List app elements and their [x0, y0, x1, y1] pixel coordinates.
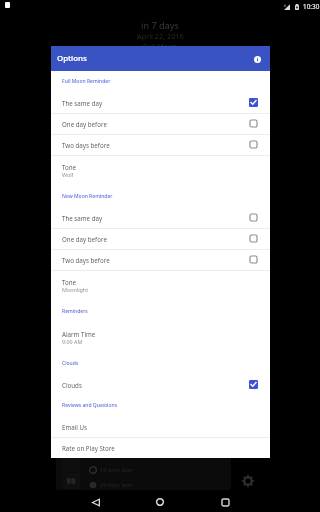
- button[interactable]: Home: [148, 492, 172, 512]
- staticText: Email Us: [62, 423, 87, 431]
- button[interactable]: Recents: [213, 492, 237, 512]
- staticText: Tone: [62, 278, 77, 286]
- button[interactable]: Two days before: [51, 134, 270, 155]
- button[interactable]: Tone: [51, 155, 270, 186]
- staticText: Tone: [62, 163, 77, 171]
- button[interactable]: Info: [250, 52, 264, 66]
- staticText: Wolf: [62, 171, 74, 178]
- button[interactable]: Back: [84, 492, 108, 512]
- staticText: Options: [57, 53, 87, 64]
- button[interactable]: Reviews and Questions: [51, 395, 270, 416]
- staticText: in 7 days: [141, 19, 179, 31]
- button[interactable]: Reminders: [51, 301, 270, 322]
- button[interactable]: Settings: [237, 470, 259, 492]
- staticText: Moonlight: [62, 286, 89, 293]
- button[interactable]: Email Us: [51, 416, 270, 437]
- button[interactable]: Alarm Time: [51, 322, 270, 353]
- staticText: 10:30: [303, 2, 320, 11]
- staticText: The same day: [62, 214, 249, 222]
- staticText: One day before: [62, 235, 249, 243]
- staticText: Clouds: [62, 381, 249, 389]
- staticText: Rate on Play Store: [62, 444, 115, 452]
- staticText: Reviews and Questions: [62, 402, 118, 409]
- button[interactable]: Tone: [51, 270, 270, 301]
- button[interactable]: Clouds: [51, 353, 270, 374]
- button[interactable]: Rate on Play Store: [51, 437, 270, 458]
- staticText: Two days before: [62, 256, 249, 264]
- staticText: 14 days later: [100, 466, 134, 474]
- button[interactable]: The same day: [51, 92, 270, 113]
- button[interactable]: New Moon Reminder: [51, 186, 270, 207]
- button[interactable]: Clouds: [51, 374, 270, 395]
- staticText: 9:00 AM: [62, 338, 83, 345]
- staticText: Alarm Time: [62, 330, 96, 338]
- button[interactable]: One day before: [51, 228, 270, 249]
- staticText: April 22, 2016: [137, 31, 184, 41]
- button[interactable]: One day before: [51, 113, 270, 134]
- staticText: Clouds: [62, 360, 79, 367]
- button[interactable]: The same day: [51, 207, 270, 228]
- staticText: Full Moon: [143, 41, 177, 51]
- staticText: The same day: [62, 99, 249, 107]
- staticText: Reminders: [62, 308, 88, 315]
- staticText: Full Moon Reminder: [62, 78, 111, 85]
- staticText: 29 days later: [100, 481, 134, 489]
- staticText: New Moon Reminder: [62, 193, 113, 200]
- staticText: Two days before: [62, 141, 249, 149]
- button[interactable]: Full Moon Reminder: [51, 71, 270, 92]
- staticText: One day before: [62, 120, 249, 128]
- button[interactable]: Two days before: [51, 249, 270, 270]
